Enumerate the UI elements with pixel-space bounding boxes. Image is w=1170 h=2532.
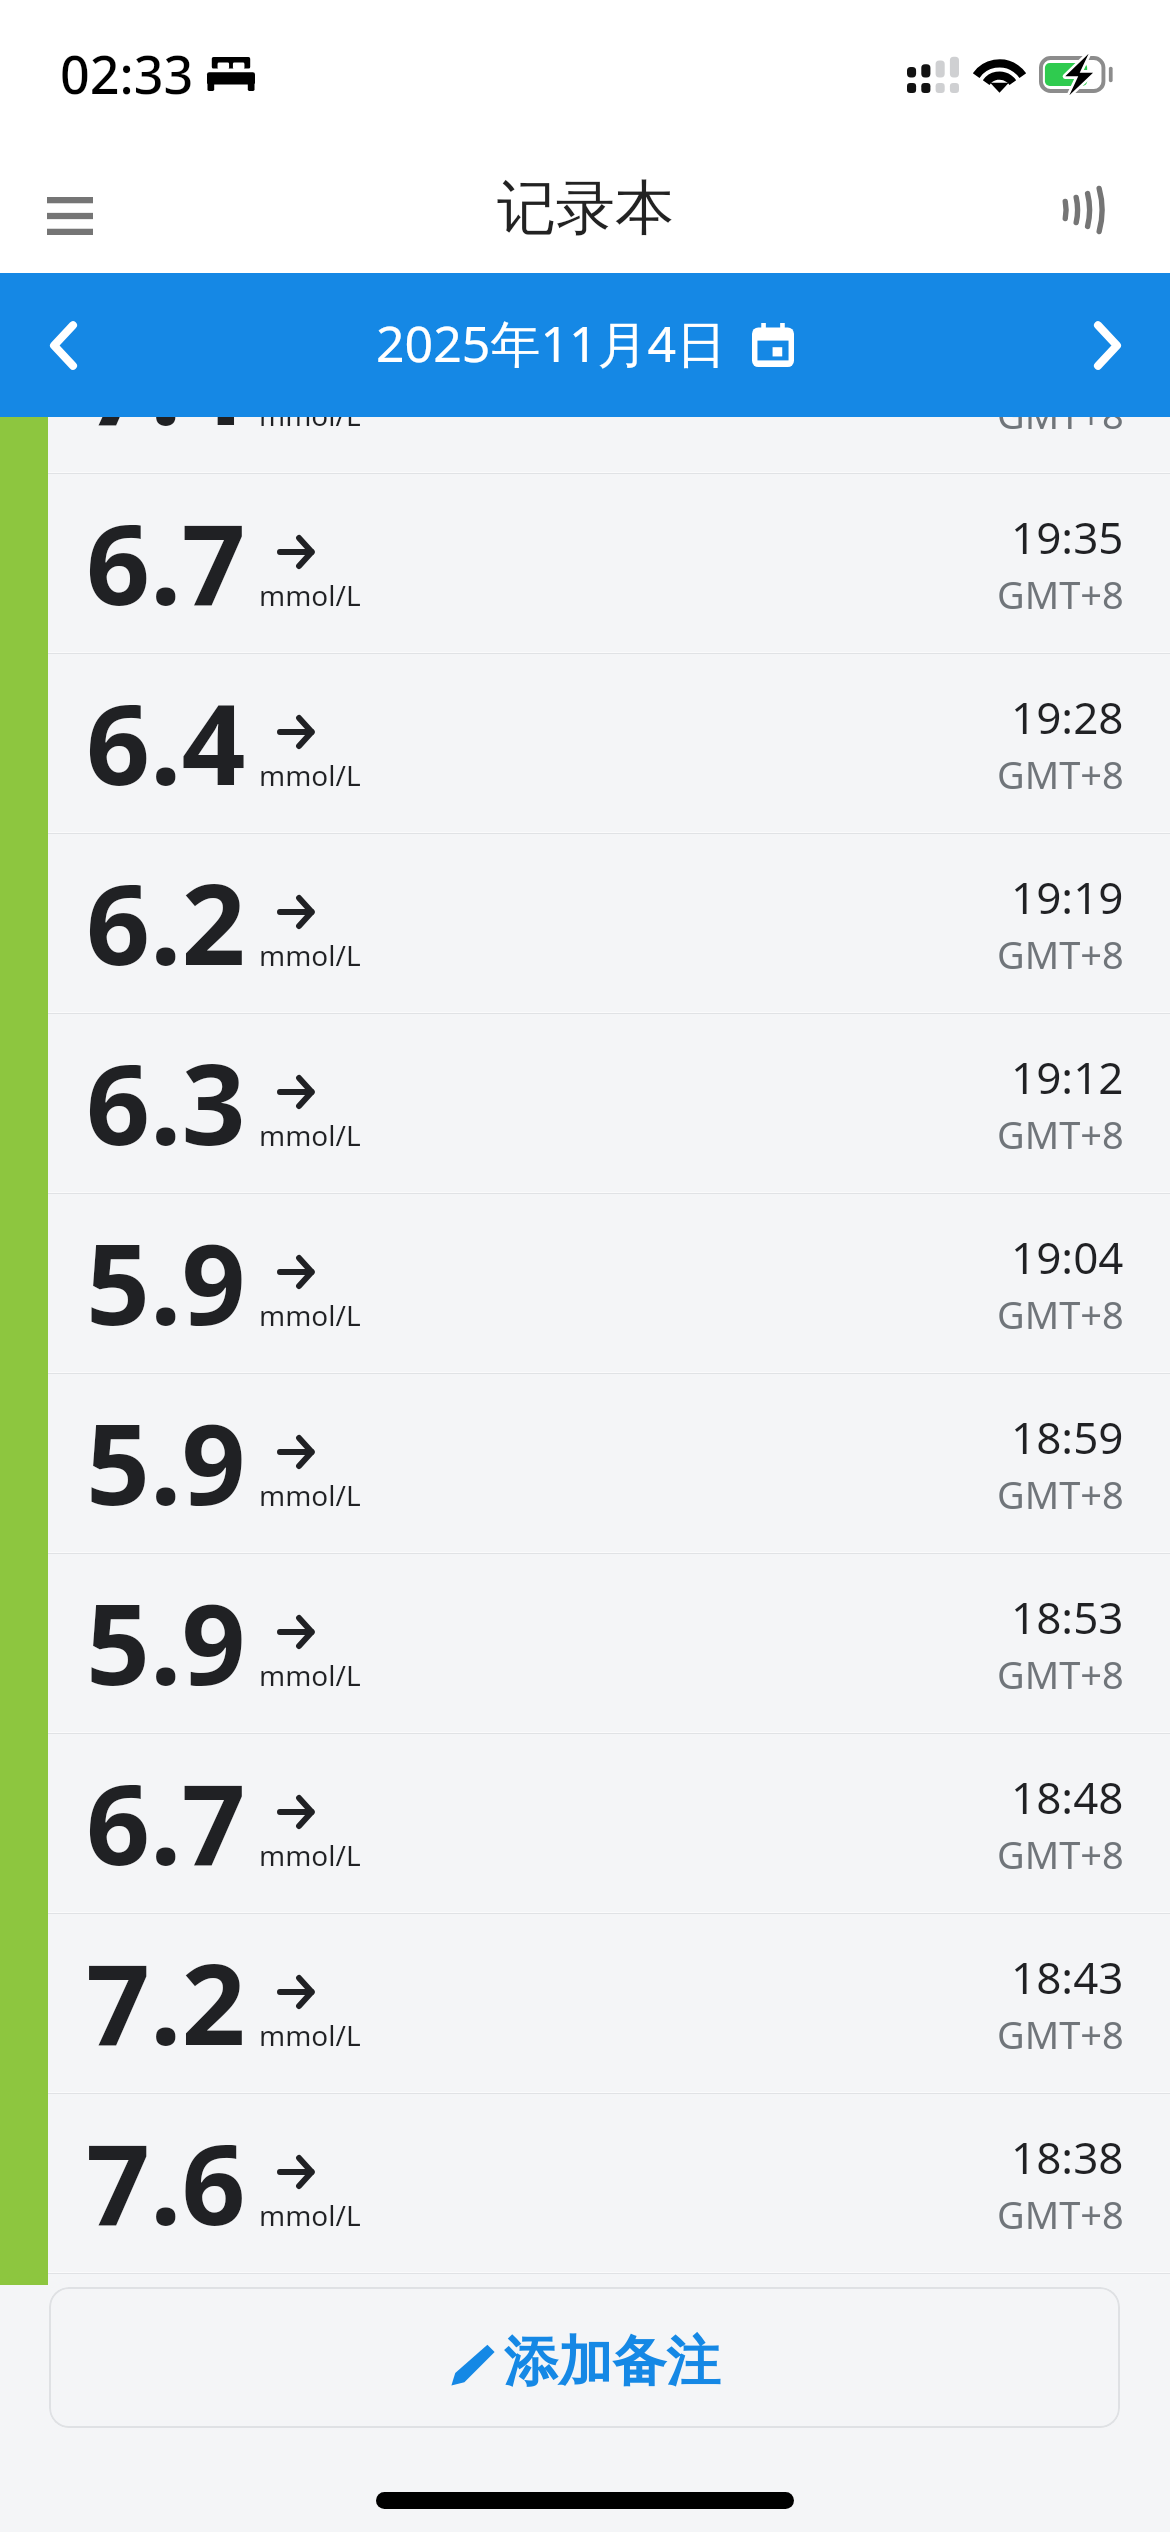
- staticText: mmol/L: [259, 576, 361, 614]
- staticText: GMT+8: [997, 1648, 1124, 1700]
- button[interactable]: 6.7: [0, 474, 1170, 652]
- button[interactable]: 5.9: [0, 1554, 1170, 1732]
- staticText: 6.7: [86, 485, 246, 638]
- staticText: 6.2: [86, 845, 246, 998]
- staticText: 5.9: [86, 1205, 246, 1358]
- button[interactable]: 6.7: [0, 1734, 1170, 1912]
- staticText: mmol/L: [259, 756, 361, 794]
- staticText: 19:19: [1011, 867, 1124, 927]
- button[interactable]: 5.9: [0, 1194, 1170, 1372]
- staticText: 5.9: [86, 1565, 246, 1718]
- button[interactable]: NFC: [1032, 162, 1128, 258]
- staticText: mmol/L: [259, 2016, 361, 2054]
- button[interactable]: 6.3: [0, 1014, 1170, 1192]
- staticText: GMT+8: [997, 568, 1124, 620]
- staticText: 5.9: [86, 1385, 246, 1538]
- staticText: 18:43: [1011, 1947, 1124, 2007]
- staticText: GMT+8: [997, 748, 1124, 800]
- staticText: 18:59: [1011, 1407, 1124, 1467]
- staticText: mmol/L: [259, 1656, 361, 1694]
- button[interactable]: 6.2: [0, 834, 1170, 1012]
- staticText: 添加备注: [504, 2328, 720, 2396]
- button[interactable]: 7.6: [0, 2094, 1170, 2272]
- button[interactable]: Previous day: [18, 300, 108, 390]
- staticText: 6.7: [86, 1745, 246, 1898]
- staticText: 02:33: [60, 38, 194, 109]
- staticText: 6.3: [86, 1025, 246, 1178]
- staticText: 19:12: [1011, 1047, 1124, 1107]
- staticText: mmol/L: [259, 417, 361, 434]
- button[interactable]: 7.4: [0, 417, 1170, 472]
- staticText: 19:28: [1011, 687, 1124, 747]
- staticText: mmol/L: [259, 1296, 361, 1334]
- staticText: GMT+8: [997, 1288, 1124, 1340]
- staticText: GMT+8: [997, 2008, 1124, 2060]
- staticText: GMT+8: [997, 928, 1124, 980]
- staticText: 18:53: [1011, 1587, 1124, 1647]
- button[interactable]: 5.9: [0, 1374, 1170, 1552]
- staticText: 2025年11月4日: [376, 309, 727, 377]
- staticText: 7.6: [86, 2105, 246, 2258]
- button[interactable]: 添加备注: [49, 2287, 1120, 2428]
- staticText: GMT+8: [997, 2188, 1124, 2240]
- button[interactable]: 7.2: [0, 1914, 1170, 2092]
- staticText: 19:35: [1011, 507, 1124, 567]
- staticText: 18:48: [1011, 1767, 1124, 1827]
- staticText: 7.4: [86, 417, 246, 458]
- staticText: GMT+8: [997, 417, 1124, 440]
- button[interactable]: Menu: [22, 168, 118, 264]
- staticText: GMT+8: [997, 1468, 1124, 1520]
- staticText: mmol/L: [259, 1116, 361, 1154]
- staticText: mmol/L: [259, 1836, 361, 1874]
- button[interactable]: Next day: [1062, 300, 1152, 390]
- staticText: 6.4: [86, 665, 246, 818]
- staticText: 18:38: [1011, 2127, 1124, 2187]
- staticText: mmol/L: [259, 1476, 361, 1514]
- staticText: GMT+8: [997, 1828, 1124, 1880]
- button[interactable]: 6.4: [0, 654, 1170, 832]
- staticText: GMT+8: [997, 1108, 1124, 1160]
- staticText: 19:04: [1011, 1227, 1124, 1287]
- staticText: 7.2: [86, 1925, 246, 2078]
- staticText: mmol/L: [259, 2196, 361, 2234]
- staticText: 记录本: [497, 171, 674, 245]
- staticText: mmol/L: [259, 936, 361, 974]
